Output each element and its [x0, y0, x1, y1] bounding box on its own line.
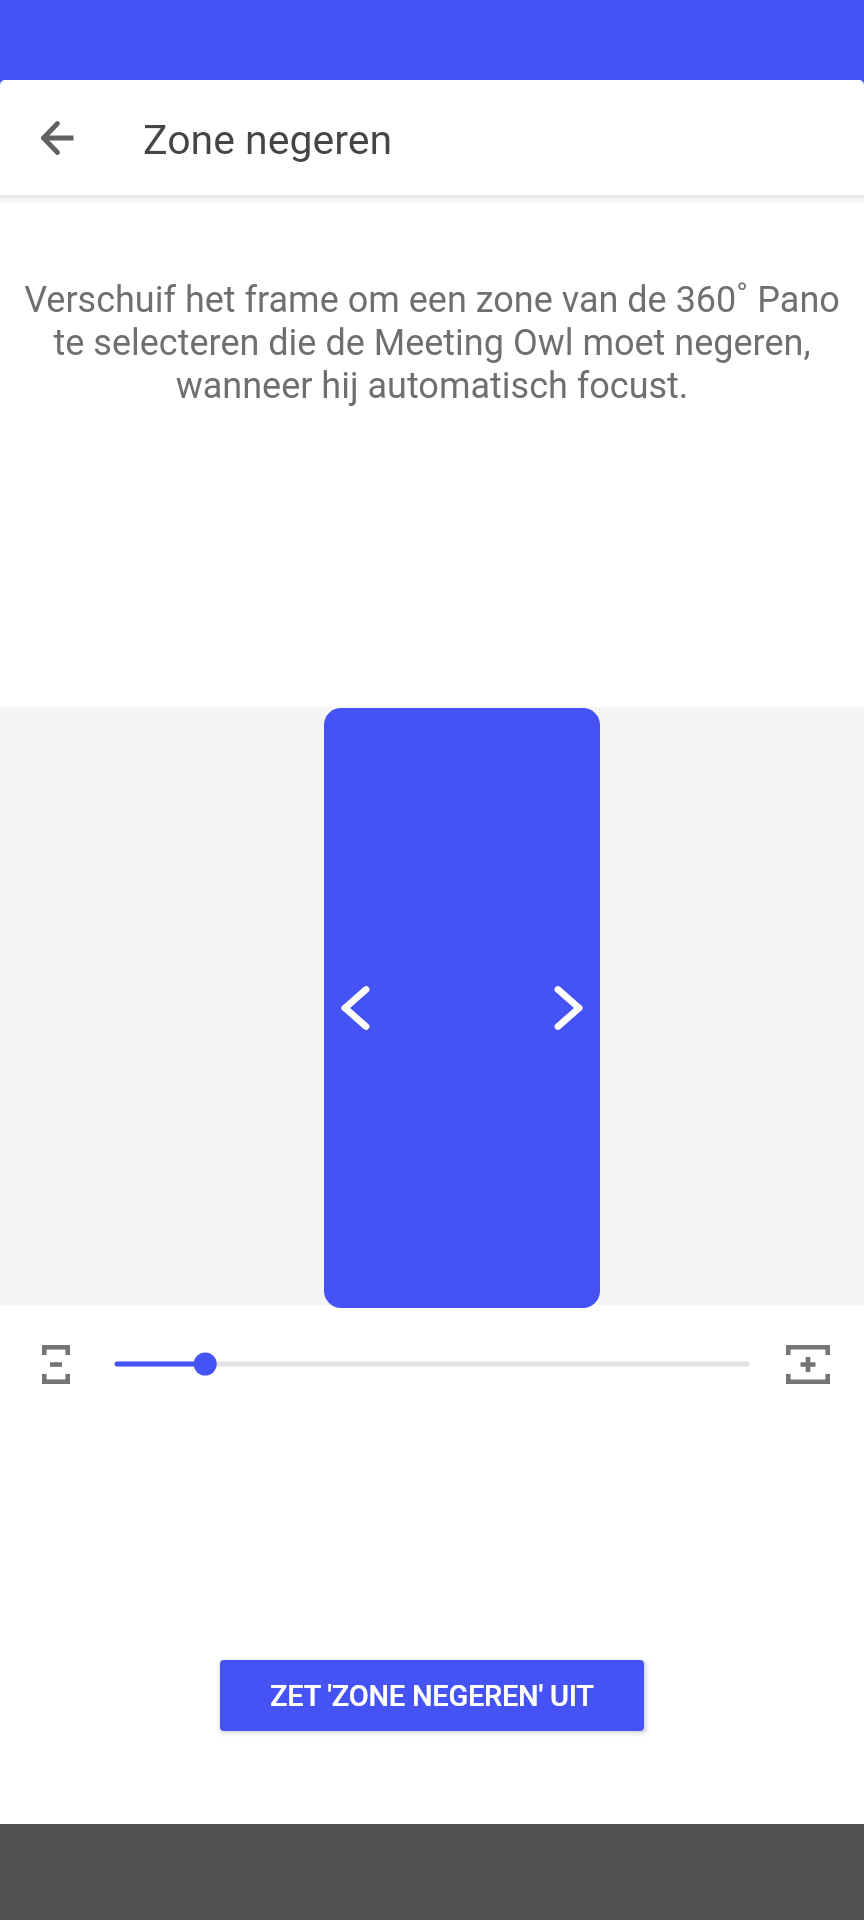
button[interactable]: Zoom out — [26, 1334, 86, 1394]
button[interactable]: Back — [10, 80, 106, 195]
button[interactable]: Zoom in — [778, 1334, 838, 1394]
button[interactable]: Ignore zone frame — [324, 708, 600, 1308]
staticText: Verschuif het frame om een zone van de 3… — [12, 279, 852, 407]
staticText: Zone negeren — [143, 116, 393, 164]
button[interactable]: Zoom level slider — [110, 1334, 754, 1394]
staticText: ZET 'ZONE NEGEREN' UIT — [270, 1679, 594, 1713]
button[interactable]: ZET 'ZONE NEGEREN' UIT — [220, 1660, 644, 1731]
